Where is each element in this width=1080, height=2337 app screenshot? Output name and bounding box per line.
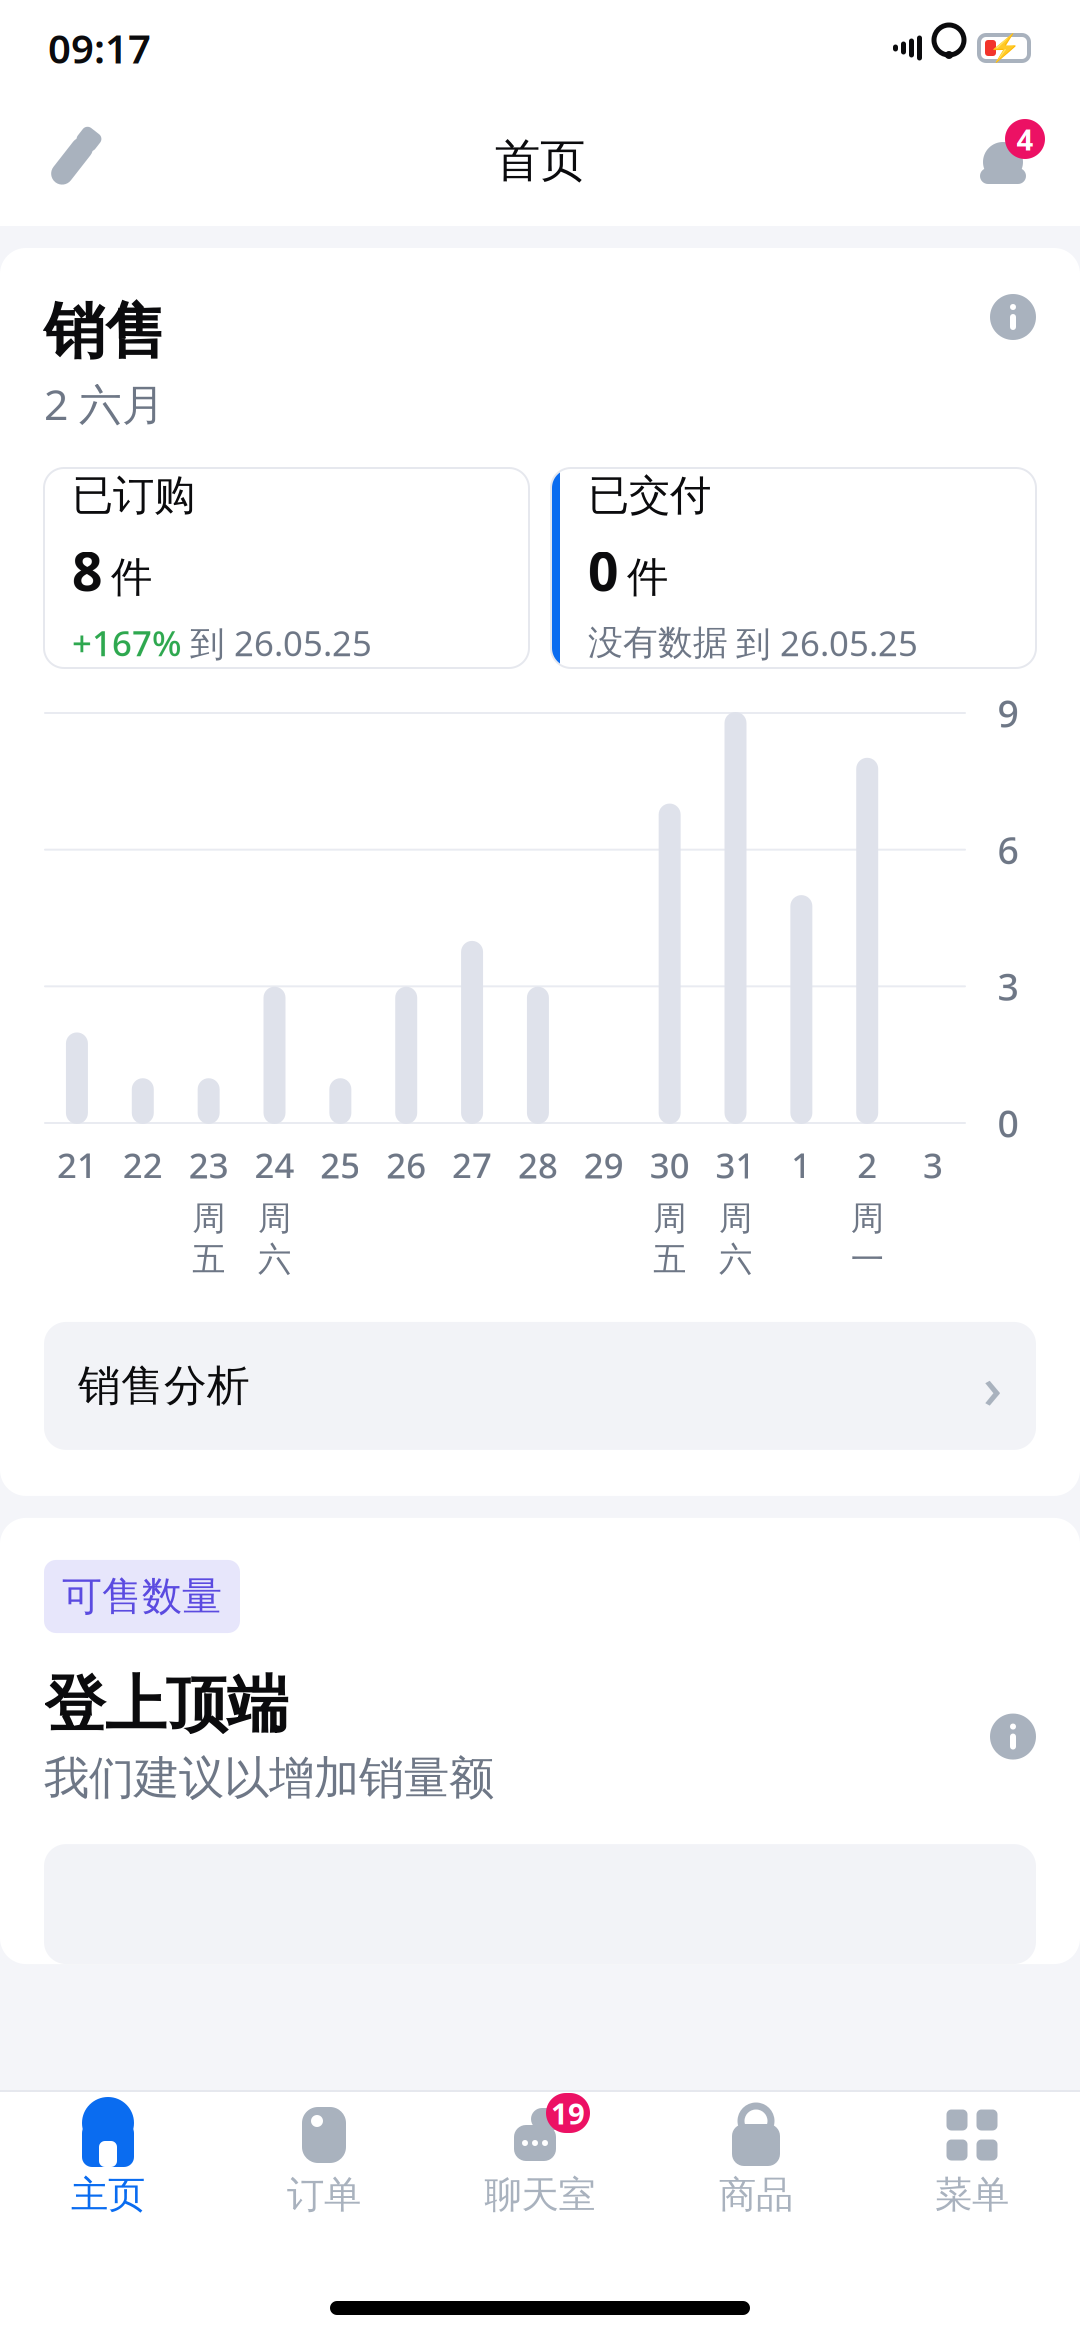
staticText: 菜单 [935,2172,1009,2218]
staticText: 2 [857,1142,877,1188]
staticText: 25 [320,1142,360,1188]
staticText: 21 [57,1142,97,1188]
button[interactable]: 登上顶端信息 [990,1714,1036,1760]
staticText: 主页 [71,2172,145,2218]
staticText: 销售分析 [78,1360,250,1412]
staticText: 0 [997,1098,1018,1148]
button[interactable]: 销售信息 [990,294,1036,340]
staticText: 23 [189,1142,229,1188]
staticText: 可售数量 [62,1572,222,1621]
button[interactable]: 订单 [216,2092,432,2226]
staticText: 4 [1016,119,1033,158]
staticText: 已订购 [72,470,195,521]
staticText: 0 [588,535,619,606]
staticText: 到 26.05.25 [190,620,372,666]
staticText: 27 [452,1142,492,1188]
staticText: 聊天室 [484,2172,595,2218]
staticText: 09:17 [48,21,151,74]
staticText: 2 六月 [44,375,165,432]
button[interactable]: 19 [432,2092,648,2226]
button[interactable]: 销售分析 [44,1322,1036,1450]
staticText: 9 [997,688,1018,738]
staticText: 周六 [719,1198,752,1280]
staticText: 周五 [653,1198,686,1280]
staticText: 22 [123,1142,163,1188]
staticText: 19 [551,2093,585,2132]
staticText: 首页 [495,133,585,189]
staticText: 8 [72,535,103,606]
staticText: › [983,1347,1002,1425]
staticText: 件 [627,552,668,603]
staticText: 没有数据 [588,621,728,664]
staticText: 29 [584,1142,624,1188]
staticText: ⚡ [987,33,1020,63]
staticText: 商品 [719,2172,793,2218]
staticText: 订单 [287,2172,361,2218]
staticText: 3 [923,1142,943,1188]
staticText: 24 [254,1142,294,1188]
button[interactable]: 主页 [0,2092,216,2226]
staticText: 我们建议以增加销量额 [44,1750,494,1806]
staticText: 1 [791,1142,811,1188]
staticText: 28 [518,1142,558,1188]
staticText: 到 26.05.25 [736,620,918,666]
staticText: 登上顶端 [44,1667,288,1742]
staticText: +167% [72,620,182,666]
staticText: 已交付 [588,470,711,521]
staticText: 30 [650,1142,690,1188]
button[interactable]: 菜单 [864,2092,1080,2226]
staticText: 31 [715,1142,755,1188]
button[interactable]: 编辑 [40,129,104,193]
staticText: 26 [386,1142,426,1188]
staticText: 6 [997,825,1018,874]
staticText: 周六 [258,1198,291,1280]
staticText: 件 [111,552,152,603]
staticText: 周一 [851,1198,884,1280]
button[interactable]: 商品 [648,2092,864,2226]
staticText: 周五 [192,1198,225,1280]
staticText: 销售 [44,294,166,369]
staticText: 3 [997,961,1018,1011]
button[interactable]: 通知 [966,124,1040,198]
